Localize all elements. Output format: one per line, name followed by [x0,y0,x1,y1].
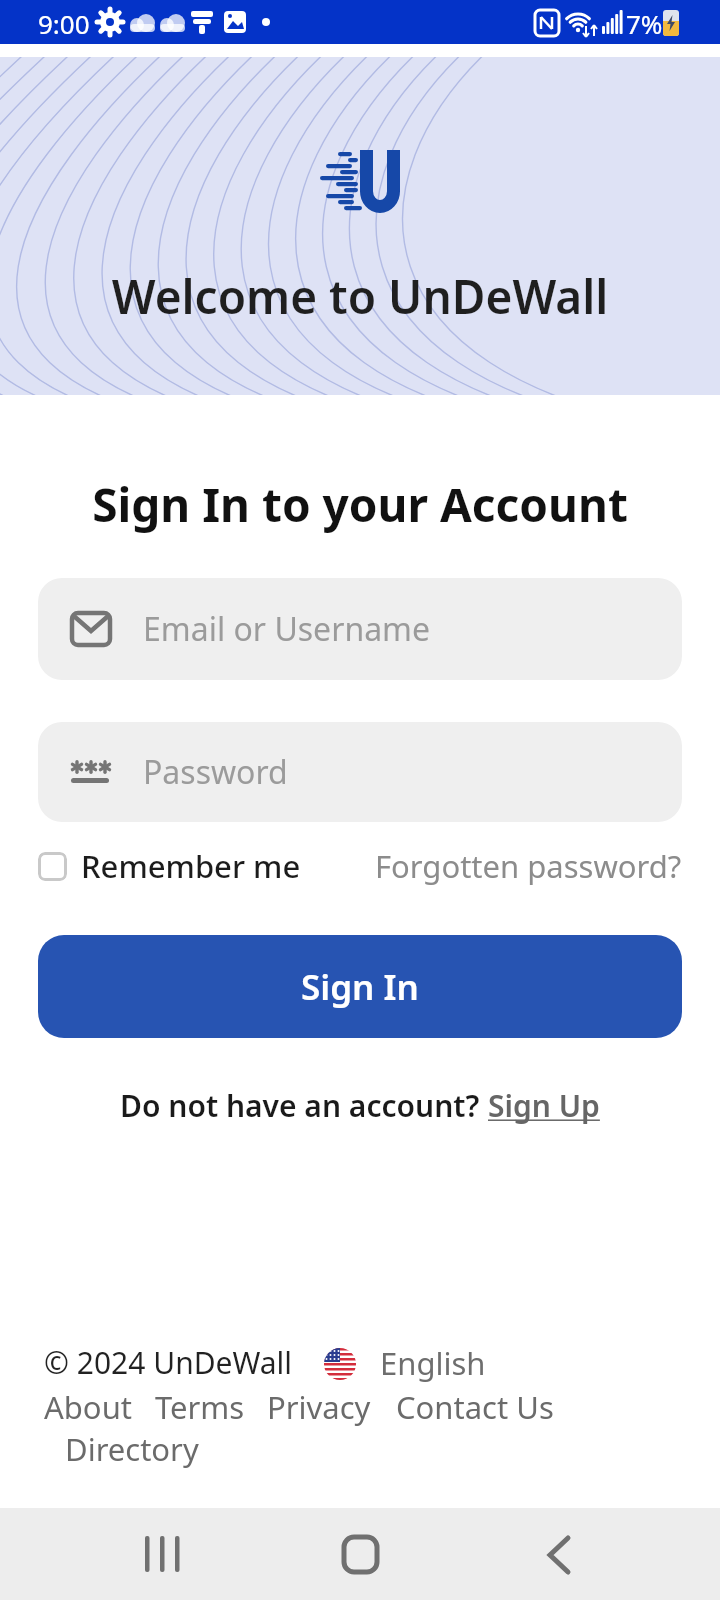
staticText: 9:00 [38,6,90,41]
staticText: © 2024 UnDeWall [44,1342,293,1383]
button[interactable]: English [380,1342,486,1384]
button[interactable]: Remember me [38,845,301,887]
button[interactable] [120,1508,200,1588]
button[interactable] [320,1508,400,1588]
staticText: Sign In to your Account [0,473,720,536]
staticText: Do not have an account? [120,1085,488,1126]
button[interactable]: Sign In [38,935,682,1038]
staticText: Email or Username [143,607,431,651]
button[interactable] [520,1508,600,1588]
button[interactable]: Forgotten password? [375,845,682,887]
staticText: Sign In [301,963,419,1011]
staticText: Password [143,750,288,794]
button[interactable]: Directory [65,1428,199,1470]
button[interactable]: Terms [155,1386,245,1428]
button[interactable]: Password [38,722,682,822]
button[interactable]: Contact Us [396,1386,554,1428]
button[interactable]: Email or Username [38,578,682,680]
staticText: Remember me [81,845,301,887]
staticText: 7% [626,6,663,41]
button[interactable] [324,1348,356,1380]
button[interactable]: About [44,1386,132,1428]
button[interactable]: Privacy [267,1386,371,1428]
button[interactable]: Sign Up [488,1085,600,1126]
staticText: Welcome to UnDeWall [0,265,720,328]
